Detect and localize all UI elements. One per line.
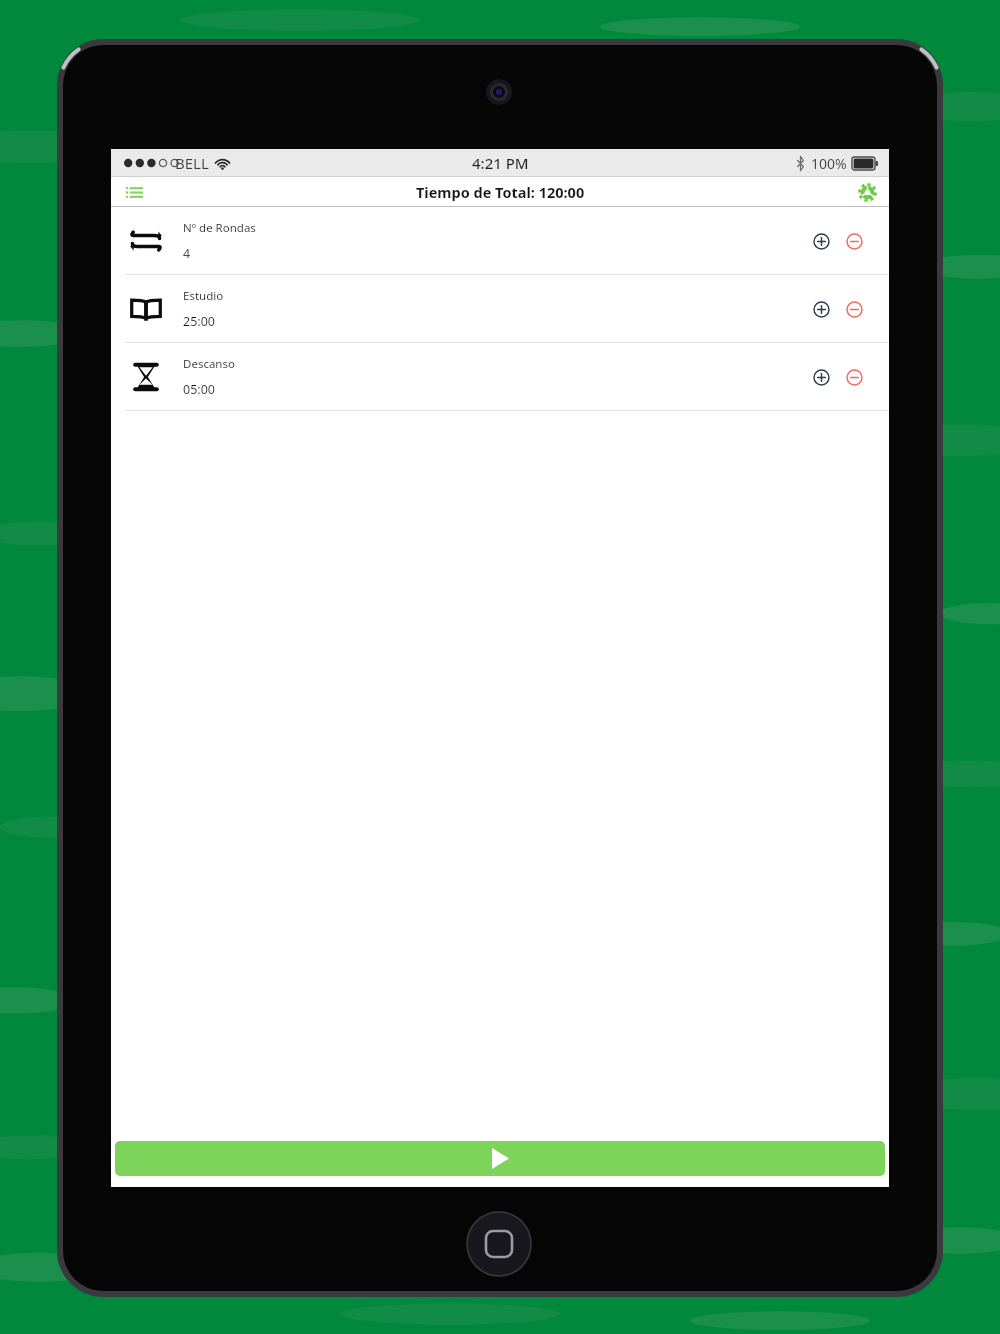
staticText: Nº de Rondas: [183, 220, 256, 236]
button[interactable]: Estudio: [111, 275, 889, 343]
button[interactable]: Menu: [119, 177, 149, 207]
staticText: 4:21 PM: [472, 153, 529, 173]
button[interactable]: Start: [115, 1141, 885, 1176]
staticText: Estudio: [183, 288, 224, 304]
button[interactable]: Decrease Estudio: [839, 294, 869, 324]
staticText: BELL: [175, 153, 209, 173]
button[interactable]: Settings: [852, 177, 882, 207]
staticText: 05:00: [183, 381, 215, 398]
staticText: 4: [183, 245, 191, 262]
staticText: 100%: [811, 154, 847, 173]
button[interactable]: Increase Estudio: [806, 294, 836, 324]
button[interactable]: Decrease Nº de Rondas: [839, 226, 869, 256]
button[interactable]: Increase Descanso: [806, 362, 836, 392]
button[interactable]: Increase Nº de Rondas: [806, 226, 836, 256]
button[interactable]: Nº de Rondas: [111, 207, 889, 275]
staticText: Descanso: [183, 356, 235, 372]
staticText: 25:00: [183, 313, 215, 330]
staticText: Tiempo de Total: 120:00: [416, 182, 585, 202]
button[interactable]: Decrease Descanso: [839, 362, 869, 392]
button[interactable]: Descanso: [111, 343, 889, 411]
